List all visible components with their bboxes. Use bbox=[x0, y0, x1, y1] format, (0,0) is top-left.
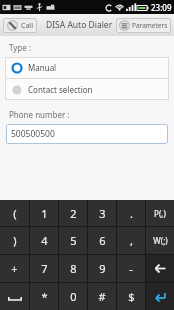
staticText: P(,) bbox=[154, 208, 166, 219]
button[interactable]: Parameters bbox=[116, 18, 171, 33]
button[interactable]: Contact selection bbox=[5, 79, 169, 100]
button[interactable]: 0 bbox=[59, 283, 87, 310]
staticText: 4 bbox=[41, 233, 48, 248]
staticText: 6 bbox=[99, 233, 106, 248]
button[interactable]: 3 bbox=[88, 200, 116, 226]
button[interactable]: Call bbox=[3, 18, 37, 33]
staticText: # bbox=[98, 289, 106, 304]
button[interactable]: + bbox=[0, 255, 29, 282]
staticText: Contact selection bbox=[28, 84, 93, 95]
button[interactable]: 4 bbox=[30, 227, 58, 254]
staticText: 500500500 bbox=[11, 128, 55, 140]
staticText: 1 bbox=[41, 206, 48, 221]
staticText: $ bbox=[128, 289, 135, 304]
button[interactable]: 8 bbox=[59, 255, 87, 282]
staticText: ( bbox=[13, 206, 17, 221]
button[interactable]: * bbox=[30, 283, 58, 310]
button[interactable]: , bbox=[117, 227, 145, 254]
staticText: 2 bbox=[70, 206, 77, 221]
button[interactable]: 2 bbox=[59, 200, 87, 226]
staticText: Phone number : bbox=[9, 109, 70, 120]
staticText: DISA Auto Dialer bbox=[46, 19, 113, 31]
other: Call bbox=[7, 20, 18, 31]
staticText: 0 bbox=[70, 289, 77, 304]
staticText: W(;) bbox=[153, 235, 168, 246]
staticText: Parameters bbox=[132, 21, 168, 30]
staticText: . bbox=[130, 206, 133, 221]
staticText: 3 bbox=[99, 206, 106, 221]
button[interactable]: Enter bbox=[146, 283, 174, 310]
button[interactable]: 5 bbox=[59, 227, 87, 254]
staticText: 8 bbox=[70, 261, 77, 276]
button[interactable]: . bbox=[117, 200, 145, 226]
button[interactable]: ) bbox=[0, 227, 29, 254]
button[interactable]: 500500500 bbox=[6, 124, 168, 144]
button[interactable]: P(,) bbox=[146, 200, 174, 226]
button[interactable]: Backspace bbox=[146, 255, 174, 282]
button[interactable]: Space bbox=[0, 283, 29, 310]
staticText: 9 bbox=[99, 261, 106, 276]
staticText: 23:09 bbox=[151, 2, 172, 13]
button[interactable]: $ bbox=[117, 283, 145, 310]
button[interactable]: # bbox=[88, 283, 116, 310]
staticText: + bbox=[11, 261, 18, 276]
staticText: 7 bbox=[41, 261, 48, 276]
staticText: , bbox=[130, 233, 133, 248]
staticText: Call bbox=[21, 21, 33, 31]
staticText: Manual bbox=[28, 62, 57, 73]
button[interactable]: 1 bbox=[30, 200, 58, 226]
staticText: * bbox=[41, 289, 48, 304]
button[interactable]: - bbox=[117, 255, 145, 282]
staticText: Type : bbox=[9, 42, 32, 53]
button[interactable]: W(;) bbox=[146, 227, 174, 254]
staticText: ) bbox=[13, 233, 17, 248]
other: Parameters bbox=[119, 20, 130, 31]
staticText: 5 bbox=[70, 233, 77, 248]
staticText: - bbox=[129, 261, 133, 276]
button[interactable]: ( bbox=[0, 200, 29, 226]
button[interactable]: 7 bbox=[30, 255, 58, 282]
button[interactable]: Manual bbox=[5, 57, 169, 78]
button[interactable]: 6 bbox=[88, 227, 116, 254]
button[interactable]: 9 bbox=[88, 255, 116, 282]
